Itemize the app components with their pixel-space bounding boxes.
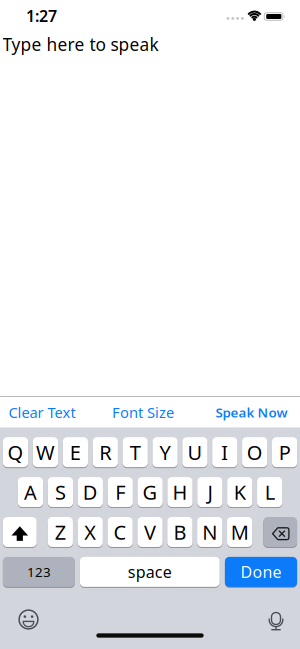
staticText: I: [221, 439, 228, 465]
button[interactable]: G: [137, 477, 163, 507]
button[interactable]: [263, 517, 297, 547]
staticText: K: [234, 479, 246, 505]
staticText: space: [128, 561, 172, 582]
button[interactable]: [3, 517, 37, 547]
button[interactable]: Font Size: [112, 403, 174, 422]
staticText: Clear Text: [8, 403, 75, 422]
staticText: H: [172, 479, 187, 505]
button[interactable]: Z: [48, 517, 73, 547]
staticText: O: [247, 439, 263, 465]
button[interactable]: F: [107, 477, 133, 507]
staticText: 123: [27, 563, 51, 581]
staticText: J: [207, 479, 212, 505]
button[interactable]: N: [197, 517, 222, 547]
staticText: U: [187, 439, 202, 465]
button[interactable]: L: [257, 477, 282, 507]
button[interactable]: W: [33, 437, 58, 467]
button[interactable]: S: [48, 477, 73, 507]
button[interactable]: H: [167, 477, 193, 507]
button[interactable]: K: [227, 477, 252, 507]
button[interactable]: I: [212, 437, 237, 467]
button[interactable]: B: [167, 517, 192, 547]
button[interactable]: Done: [225, 557, 297, 587]
staticText: F: [115, 479, 125, 505]
button[interactable]: J: [197, 477, 222, 507]
staticText: R: [99, 439, 111, 465]
staticText: Done: [240, 561, 281, 582]
staticText: S: [55, 479, 66, 505]
staticText: T: [130, 439, 141, 465]
button[interactable]: Clear Text: [8, 403, 75, 422]
staticText: A: [24, 479, 37, 505]
button[interactable]: X: [77, 517, 103, 547]
button[interactable]: space: [80, 557, 220, 587]
staticText: N: [202, 519, 217, 545]
staticText: Z: [55, 519, 66, 545]
button[interactable]: C: [107, 517, 133, 547]
staticText: X: [84, 519, 96, 545]
staticText: D: [83, 479, 98, 505]
staticText: Type here to speak: [2, 33, 158, 56]
button[interactable]: Q: [3, 437, 28, 467]
staticText: M: [231, 519, 249, 545]
staticText: C: [114, 519, 127, 545]
button[interactable]: M: [227, 517, 252, 547]
staticText: B: [173, 519, 186, 545]
staticText: Speak Now: [215, 403, 287, 421]
button[interactable]: U: [182, 437, 208, 467]
staticText: E: [70, 439, 81, 465]
button[interactable]: O: [242, 437, 267, 467]
staticText: L: [265, 479, 275, 505]
button[interactable]: P: [272, 437, 297, 467]
button[interactable]: Speak Now: [215, 403, 287, 421]
staticText: V: [144, 519, 156, 545]
button[interactable]: E: [63, 437, 88, 467]
button[interactable]: [262, 606, 290, 634]
button[interactable]: Y: [152, 437, 178, 467]
button[interactable]: T: [122, 437, 148, 467]
staticText: G: [143, 479, 158, 505]
staticText: 1:27: [26, 5, 57, 26]
staticText: W: [36, 439, 55, 465]
staticText: Q: [8, 439, 24, 465]
button[interactable]: D: [78, 477, 103, 507]
staticText: Y: [160, 439, 171, 465]
staticText: Font Size: [112, 403, 174, 422]
button[interactable]: 123: [3, 557, 75, 587]
button[interactable]: V: [137, 517, 163, 547]
button[interactable]: R: [93, 437, 118, 467]
button[interactable]: [14, 605, 42, 633]
staticText: P: [279, 439, 291, 465]
button[interactable]: A: [18, 477, 43, 507]
